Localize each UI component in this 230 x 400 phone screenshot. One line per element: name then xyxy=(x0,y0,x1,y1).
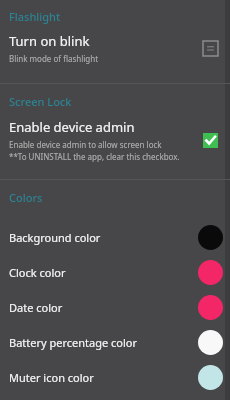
staticText: Clock color xyxy=(9,265,198,280)
staticText: Enable device admin xyxy=(9,118,135,136)
button[interactable]: Checkbox checked xyxy=(196,126,224,154)
staticText: Battery percentage color xyxy=(9,335,198,350)
button[interactable]: Battery percentage color xyxy=(0,325,230,360)
staticText: Date color xyxy=(9,300,198,315)
staticText: **To UNINSTALL the app, clear this check… xyxy=(9,151,180,162)
staticText: Background color xyxy=(9,230,198,245)
button[interactable]: Turn on blink xyxy=(0,24,230,71)
button[interactable]: Enable device admin xyxy=(0,109,230,171)
button[interactable]: Background color xyxy=(0,220,230,255)
staticText: Blink mode of flashlight xyxy=(9,53,99,64)
staticText: Enable device admin to allow screen lock xyxy=(9,139,162,150)
button[interactable]: Muter icon color xyxy=(0,360,230,395)
staticText: Turn on blink xyxy=(9,32,90,50)
button[interactable]: Checkbox unchecked xyxy=(196,34,224,62)
staticText: Muter icon color xyxy=(9,370,198,385)
staticText: Colors xyxy=(9,190,43,205)
button[interactable]: Date color xyxy=(0,290,230,325)
button[interactable]: Clock color xyxy=(0,255,230,290)
staticText: Flashlight xyxy=(9,9,61,24)
staticText: Screen Lock xyxy=(9,94,72,109)
